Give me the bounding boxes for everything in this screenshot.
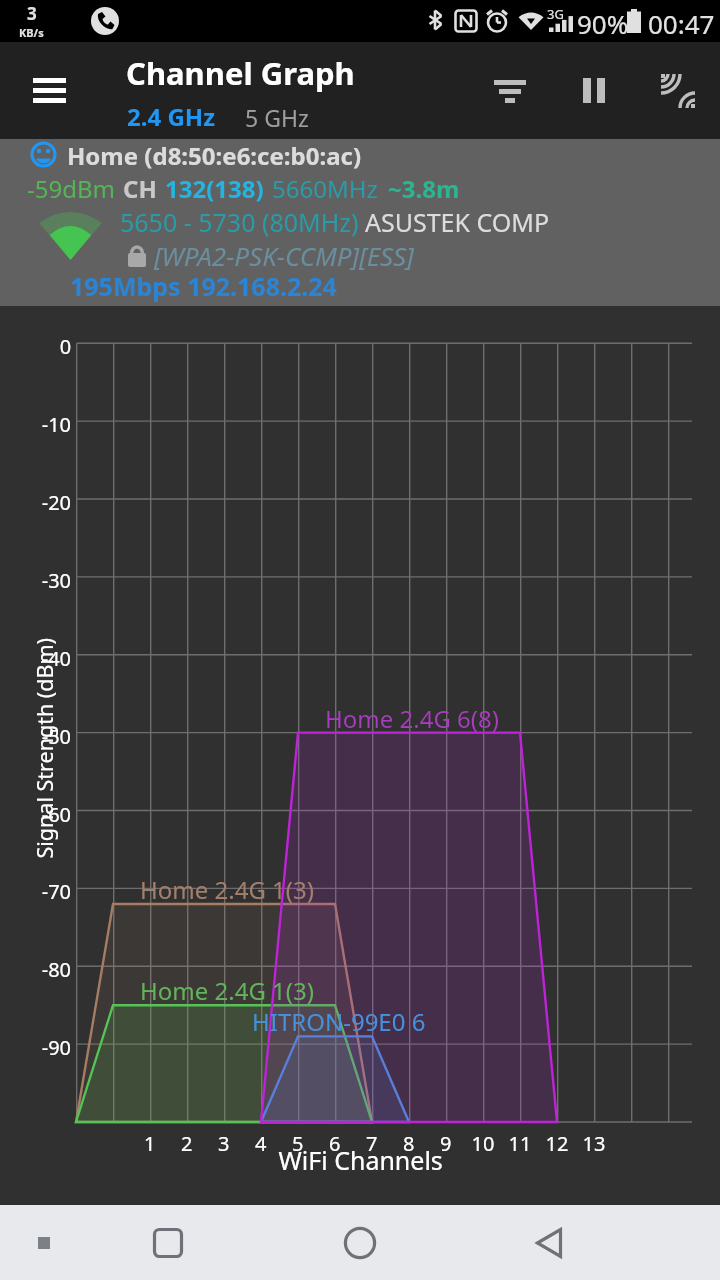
staticText: ASUSTEK COMP bbox=[365, 205, 550, 239]
staticText: KB/s bbox=[19, 25, 44, 40]
button[interactable]: Recent apps bbox=[138, 1213, 198, 1273]
staticText: [WPA2-PSK-CCMP][ESS] bbox=[154, 238, 414, 273]
button[interactable]: Scan access points bbox=[636, 42, 720, 139]
staticText: 5 GHz bbox=[245, 102, 309, 133]
button[interactable]: Back bbox=[521, 1213, 581, 1273]
staticText: 3 bbox=[27, 2, 37, 25]
button[interactable]: Pause bbox=[552, 42, 636, 139]
staticText: 5650 - 5730 (80MHz) bbox=[120, 205, 359, 239]
staticText: 2.4 GHz bbox=[127, 100, 216, 133]
staticText: 90% bbox=[577, 6, 629, 41]
staticText: -59dBm bbox=[27, 172, 115, 205]
button[interactable]: Home bbox=[330, 1213, 390, 1273]
button[interactable]: Menu bbox=[0, 42, 97, 139]
staticText: 132(138) bbox=[165, 172, 264, 205]
staticText: 195Mbps 192.168.2.24 bbox=[70, 269, 337, 303]
staticText: 3G bbox=[547, 5, 564, 23]
staticText: 5660MHz bbox=[272, 172, 378, 205]
staticText: ~3.8m bbox=[388, 172, 460, 205]
button[interactable]: 5 GHz bbox=[245, 102, 309, 133]
staticText: Channel Graph bbox=[126, 52, 355, 94]
staticText: Home (d8:50:e6:ce:b0:ac) bbox=[67, 139, 362, 172]
button[interactable]: Filter bbox=[468, 42, 552, 139]
staticText: CH bbox=[123, 172, 157, 205]
button[interactable]: 2.4 GHz bbox=[127, 100, 216, 133]
staticText: 00:47 bbox=[648, 6, 715, 41]
button[interactable]: Menu bbox=[14, 1213, 74, 1273]
